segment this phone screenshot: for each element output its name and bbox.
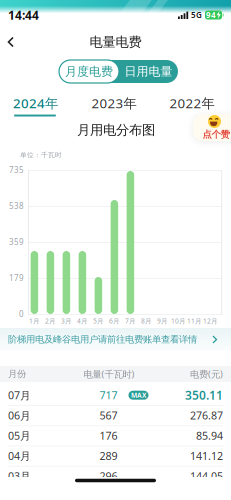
- staticText: 94: [206, 10, 216, 20]
- staticText: 144.05: [190, 469, 223, 483]
- staticText: 5月: [93, 317, 104, 325]
- staticText: 03月: [8, 469, 31, 483]
- staticText: 阶梯用电及峰谷电用户请前往电费账单查看详情: [8, 334, 197, 345]
- staticText: 5G: [191, 10, 202, 20]
- staticText: 176: [99, 428, 117, 443]
- staticText: 0: [19, 309, 24, 319]
- button[interactable]: 2023年: [79, 92, 149, 114]
- staticText: 1月: [29, 317, 40, 325]
- button[interactable]: Back: [2, 34, 26, 49]
- staticText: 12月: [203, 317, 218, 325]
- staticText: 10月: [171, 317, 186, 325]
- staticText: 179: [9, 273, 24, 283]
- button[interactable]: 2024年: [0, 92, 70, 114]
- staticText: 296: [99, 469, 117, 483]
- staticText: 9月: [157, 317, 168, 325]
- staticText: 289: [99, 449, 117, 463]
- staticText: 11月: [187, 317, 202, 325]
- staticText: 350.11: [185, 387, 223, 403]
- staticText: 8月: [141, 317, 152, 325]
- staticText: 567: [99, 408, 117, 422]
- staticText: 6月: [109, 317, 120, 325]
- staticText: 04月: [8, 449, 31, 463]
- staticText: 3月: [61, 317, 72, 325]
- staticText: 2022年: [169, 94, 214, 112]
- staticText: 14:44: [8, 7, 39, 23]
- button[interactable]: 阶梯用电及峰谷电用户请前往电费账单查看详情: [0, 328, 231, 351]
- staticText: 月度电费: [65, 64, 113, 79]
- staticText: 141.12: [190, 449, 223, 463]
- staticText: 538: [9, 201, 24, 211]
- staticText: 717: [99, 388, 117, 402]
- staticText: 月用电分布图: [77, 122, 155, 138]
- staticText: 日用电量: [124, 64, 172, 79]
- staticText: 单位：千瓦时: [20, 151, 62, 159]
- staticText: 735: [9, 165, 24, 175]
- staticText: 06月: [8, 408, 31, 422]
- button[interactable]: 点个赞: [193, 114, 231, 141]
- staticText: 7月: [125, 317, 136, 325]
- button[interactable]: 月度电费: [59, 60, 119, 83]
- staticText: 电费(元): [190, 368, 223, 380]
- staticText: 07月: [8, 388, 31, 402]
- staticText: 电量电费: [89, 34, 141, 50]
- staticText: 月份: [8, 368, 26, 380]
- staticText: 点个赞: [202, 129, 229, 140]
- staticText: 2024年: [13, 94, 58, 112]
- staticText: 2月: [45, 317, 56, 325]
- staticText: 05月: [8, 428, 31, 443]
- staticText: 359: [9, 237, 24, 247]
- staticText: 85.94: [196, 428, 223, 443]
- staticText: 4月: [77, 317, 88, 325]
- staticText: 2023年: [91, 94, 136, 112]
- staticText: 276.87: [190, 408, 223, 422]
- staticText: 电量(千瓦时): [83, 368, 134, 380]
- button[interactable]: 2022年: [157, 92, 227, 114]
- staticText: MAX: [131, 391, 146, 400]
- button[interactable]: 日用电量: [119, 60, 178, 83]
